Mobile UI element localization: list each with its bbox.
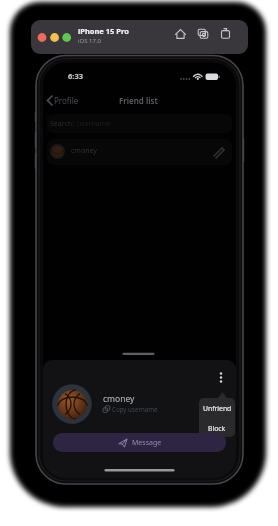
button[interactable]: Copy username <box>101 404 159 415</box>
staticText: Profile <box>54 95 79 106</box>
button[interactable]: Profile <box>44 93 90 108</box>
staticText: Block <box>208 424 226 433</box>
staticText: Friend list <box>119 95 158 106</box>
staticText: username <box>77 119 111 129</box>
staticText: iPhone 15 Pro <box>78 26 129 36</box>
staticText: Search: <box>50 119 75 129</box>
staticText: cmoney <box>71 146 97 156</box>
button[interactable]: Unfriend <box>199 398 235 418</box>
button[interactable]: Message <box>53 433 226 452</box>
staticText: Message <box>132 438 162 448</box>
staticText: Unfriend <box>203 404 232 413</box>
staticText: Copy username <box>112 405 158 413</box>
staticText: 6:33 <box>68 71 83 81</box>
button[interactable]: Block <box>199 418 235 437</box>
button[interactable] <box>214 368 230 388</box>
button[interactable]: Search: <box>47 114 232 133</box>
staticText: iOS 17.0 <box>78 37 101 45</box>
staticText: cmoney <box>103 393 135 405</box>
button[interactable]: cmoney <box>47 139 232 165</box>
